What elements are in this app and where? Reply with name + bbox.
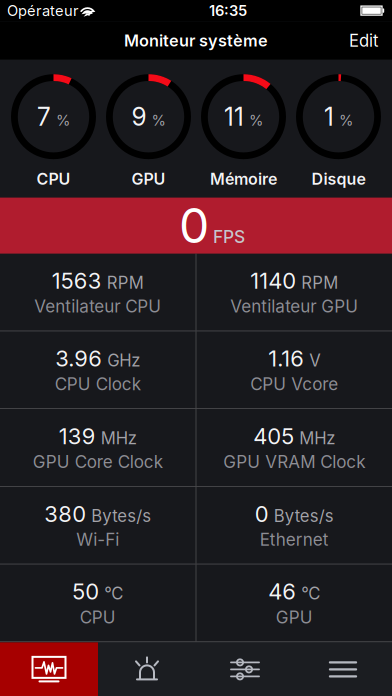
staticText: Ventilateur GPU <box>230 296 358 317</box>
staticText: FPS <box>213 226 245 247</box>
staticText: 0 <box>179 197 209 255</box>
button[interactable]: Menu <box>294 642 392 696</box>
staticText: GPU VRAM Clock <box>223 451 365 472</box>
staticText: MHz <box>101 428 137 448</box>
staticText: °C <box>301 583 320 604</box>
staticText: 11 <box>224 102 244 132</box>
staticText: 16:35 <box>209 2 247 19</box>
staticText: Bytes/s <box>91 506 151 526</box>
staticText: % <box>339 111 353 129</box>
staticText: 1563 <box>52 267 102 294</box>
staticText: % <box>249 111 263 129</box>
staticText: MHz <box>299 428 335 448</box>
staticText: 1.16 <box>268 345 304 372</box>
staticText: 139 <box>59 423 96 449</box>
button[interactable]: Alerts <box>98 642 196 696</box>
staticText: GHz <box>107 350 140 370</box>
staticText: Wi-Fi <box>76 529 119 550</box>
staticText: 1 <box>324 102 334 132</box>
staticText: Mémoire <box>210 169 277 189</box>
staticText: Edit <box>349 30 378 51</box>
staticText: CPU Clock <box>55 374 141 394</box>
staticText: 7 <box>37 102 51 132</box>
staticText: °C <box>104 583 123 604</box>
staticText: 9 <box>131 102 146 132</box>
button[interactable]: Settings <box>196 642 294 696</box>
staticText: 3.96 <box>55 345 102 372</box>
staticText: Ventilateur CPU <box>34 296 161 317</box>
staticText: Ethernet <box>260 529 329 550</box>
staticText: RPM <box>301 273 338 293</box>
staticText: 1140 <box>250 267 296 294</box>
staticText: 380 <box>44 501 86 527</box>
staticText: % <box>151 111 165 129</box>
button[interactable]: Monitor <box>0 642 98 696</box>
staticText: 46 <box>268 578 296 605</box>
staticText: Disque <box>311 169 365 189</box>
staticText: V <box>309 350 320 370</box>
staticText: CPU Vcore <box>250 374 338 394</box>
staticText: Bytes/s <box>274 506 334 526</box>
staticText: % <box>56 111 70 129</box>
staticText: CPU <box>36 169 70 189</box>
staticText: 0 <box>255 501 269 527</box>
staticText: 405 <box>253 423 294 449</box>
button[interactable]: Edit <box>335 22 392 59</box>
staticText: Opérateur <box>7 2 79 19</box>
staticText: 50 <box>72 578 99 605</box>
staticText: GPU <box>131 169 165 189</box>
staticText: Moniteur système <box>124 31 268 50</box>
staticText: RPM <box>107 273 144 293</box>
staticText: GPU Core Clock <box>33 451 163 472</box>
staticText: GPU <box>276 607 313 627</box>
staticText: CPU <box>80 607 116 627</box>
